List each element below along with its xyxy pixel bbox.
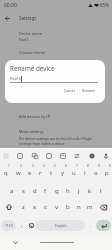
button[interactable]: u (68, 162, 79, 180)
button[interactable]: w (12, 162, 24, 180)
button[interactable]: Back (1, 12, 13, 24)
button[interactable]: h (62, 180, 73, 198)
button[interactable]: j (73, 180, 84, 198)
button[interactable]: Translate (30, 151, 40, 161)
staticText: 4 (43, 164, 45, 168)
button[interactable]: y (57, 162, 68, 180)
staticText: e (28, 169, 32, 177)
button[interactable]: r (35, 162, 46, 180)
staticText: Device name (19, 31, 42, 36)
button[interactable]: v (51, 198, 62, 216)
button[interactable]: Rename (80, 87, 98, 94)
staticText: 6 (65, 164, 67, 168)
button[interactable]: x (29, 198, 40, 216)
staticText: h (66, 187, 70, 195)
button[interactable]: Hide keyboard (11, 238, 19, 246)
staticText: 2 (20, 164, 22, 168)
button[interactable]: f (40, 180, 51, 198)
button[interactable]: Voice input (101, 151, 111, 161)
staticText: o (94, 169, 98, 177)
button[interactable]: l (95, 180, 106, 198)
staticText: f (44, 187, 47, 195)
staticText: 3 (32, 164, 34, 168)
staticText: 0 (109, 164, 111, 168)
staticText: 9 (98, 164, 100, 168)
staticText: k (88, 187, 92, 195)
staticText: w (16, 169, 21, 177)
button[interactable]: a (6, 180, 18, 198)
staticText: Settings (19, 15, 37, 21)
staticText: Pixel 6 (19, 38, 29, 42)
button[interactable]: e (24, 162, 35, 180)
staticText: Cancel (64, 88, 75, 93)
staticText: g (55, 187, 59, 195)
button[interactable]: i (79, 162, 90, 180)
staticText: r (39, 169, 42, 177)
staticText: 85% (100, 2, 109, 8)
staticText: c (44, 203, 47, 211)
button[interactable]: Enter (96, 220, 111, 231)
button[interactable]: t (46, 162, 57, 180)
button[interactable]: q (0, 162, 12, 180)
staticText: 00:00 (4, 2, 17, 9)
button[interactable]: ?123 (1, 220, 16, 231)
button[interactable]: Theme (87, 151, 97, 161)
staticText: q (4, 169, 8, 177)
staticText: 1 (8, 164, 10, 168)
button[interactable]: g (51, 180, 62, 198)
button[interactable]: b (62, 198, 73, 216)
button[interactable]: Shift (0, 198, 17, 216)
staticText: v (55, 203, 59, 211)
button[interactable]: Comma (16, 220, 27, 231)
button[interactable]: o (90, 162, 101, 180)
staticText: 7 (76, 164, 78, 168)
staticText: Add devices by IP (19, 114, 50, 119)
button[interactable]: Emoji (27, 220, 36, 231)
staticText: i (84, 169, 86, 177)
button[interactable]: Cancel (62, 87, 77, 94)
staticText: j (78, 187, 80, 195)
button[interactable]: d (29, 180, 40, 198)
staticText: z (22, 203, 25, 211)
staticText: Rename device (10, 64, 55, 73)
staticText: More settings (19, 129, 44, 134)
staticText: d (33, 187, 37, 195)
button[interactable]: Backspace (95, 198, 112, 216)
staticText: s (22, 187, 25, 195)
button[interactable]: Stickers (58, 151, 68, 161)
button[interactable]: Period (85, 220, 96, 231)
button[interactable]: p (101, 162, 112, 180)
staticText: Pixel 6 (10, 76, 21, 81)
staticText: x (33, 203, 37, 211)
button[interactable]: c (40, 198, 51, 216)
staticText: Rename (82, 88, 96, 93)
button[interactable]: GIF (44, 151, 54, 161)
button[interactable]: s (18, 180, 29, 198)
button[interactable]: Clipboard (15, 151, 25, 161)
staticText: u (72, 169, 76, 177)
button[interactable]: m (84, 198, 95, 216)
staticText: n (77, 203, 81, 211)
staticText: a (10, 187, 14, 195)
staticText: ?123 (5, 223, 13, 228)
button[interactable]: z (17, 198, 29, 216)
staticText: l (100, 187, 102, 195)
button[interactable]: English (36, 220, 85, 231)
staticText: 8 (87, 164, 89, 168)
staticText: b (66, 203, 70, 211)
staticText: p (105, 169, 109, 177)
staticText: Per device settings can be found under P… (19, 136, 93, 146)
staticText: y (61, 169, 65, 177)
staticText: . (90, 222, 92, 229)
staticText: m (87, 203, 93, 211)
staticText: , (21, 222, 23, 229)
staticText: t (50, 169, 53, 177)
button[interactable]: Settings (72, 151, 82, 161)
button[interactable]: n (73, 198, 84, 216)
staticText: English (55, 223, 67, 228)
button[interactable]: Gboard menu (1, 151, 11, 161)
staticText: 5 (54, 164, 56, 168)
button[interactable]: k (84, 180, 95, 198)
staticText: Choose theme (19, 50, 45, 55)
